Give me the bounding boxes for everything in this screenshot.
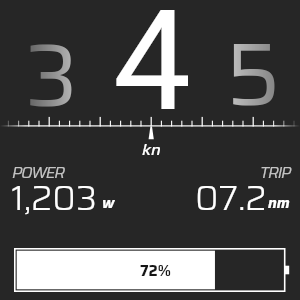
button[interactable]: Previous speed 3 <box>25 6 78 145</box>
button[interactable]: 4 <box>113 0 192 143</box>
staticText: w <box>102 192 115 215</box>
staticText: nm <box>268 192 290 215</box>
staticText: POWER <box>12 160 64 184</box>
button[interactable]: Battery 72 percent <box>14 248 290 292</box>
staticText: TRIP <box>260 160 291 184</box>
staticText: 3 <box>25 6 78 145</box>
staticText: kn <box>142 137 161 162</box>
staticText: 5 <box>226 5 281 144</box>
button[interactable]: TRIP <box>180 150 252 205</box>
staticText: 72% <box>140 259 171 283</box>
button[interactable]: POWER <box>12 150 98 205</box>
staticText: 4 <box>113 0 192 143</box>
staticText: 07.2 <box>195 170 267 225</box>
button[interactable]: Next speed 5 <box>226 5 281 144</box>
staticText: 1,203 <box>11 170 97 225</box>
